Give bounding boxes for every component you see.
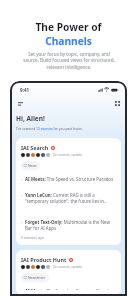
staticText: Yann LeCun: Current RAG is still a "temp… — [25, 192, 115, 204]
staticText: Channels — [45, 34, 92, 48]
staticText: AI Meets: The Speed vs. Structure Parado… — [25, 176, 114, 182]
staticText: The Power of — [35, 20, 102, 34]
staticText: AI Meets: The Speed vs. Structure Parado… — [25, 288, 114, 290]
staticText: - — [21, 176, 23, 182]
staticText: 5 minutes ago — [21, 235, 44, 240]
staticText: IAI Product Hunt — [21, 256, 67, 263]
staticText: Set your focus by topic, company, and so… — [22, 51, 116, 71]
staticText: - — [21, 192, 23, 198]
staticText: 9:41 — [20, 87, 30, 93]
staticText: Newsletter — [28, 275, 46, 280]
staticText: IAI Search — [21, 144, 49, 151]
button[interactable]: Apps — [113, 99, 121, 107]
staticText: Forget Text-Only: Multimodal is the New … — [25, 219, 115, 231]
staticText: On sources, update — [53, 265, 83, 269]
button[interactable]: IAI Product Hunt — [16, 250, 121, 295]
button[interactable]: IAI Search — [16, 138, 121, 245]
staticText: Hi, Allen! — [16, 114, 45, 123]
staticText: I've scanned 12 sources for you past hou… — [16, 126, 83, 130]
staticText: News — [28, 163, 37, 168]
button[interactable]: Menu — [16, 99, 24, 107]
staticText: - — [21, 219, 23, 225]
staticText: On sources, update — [53, 153, 83, 157]
